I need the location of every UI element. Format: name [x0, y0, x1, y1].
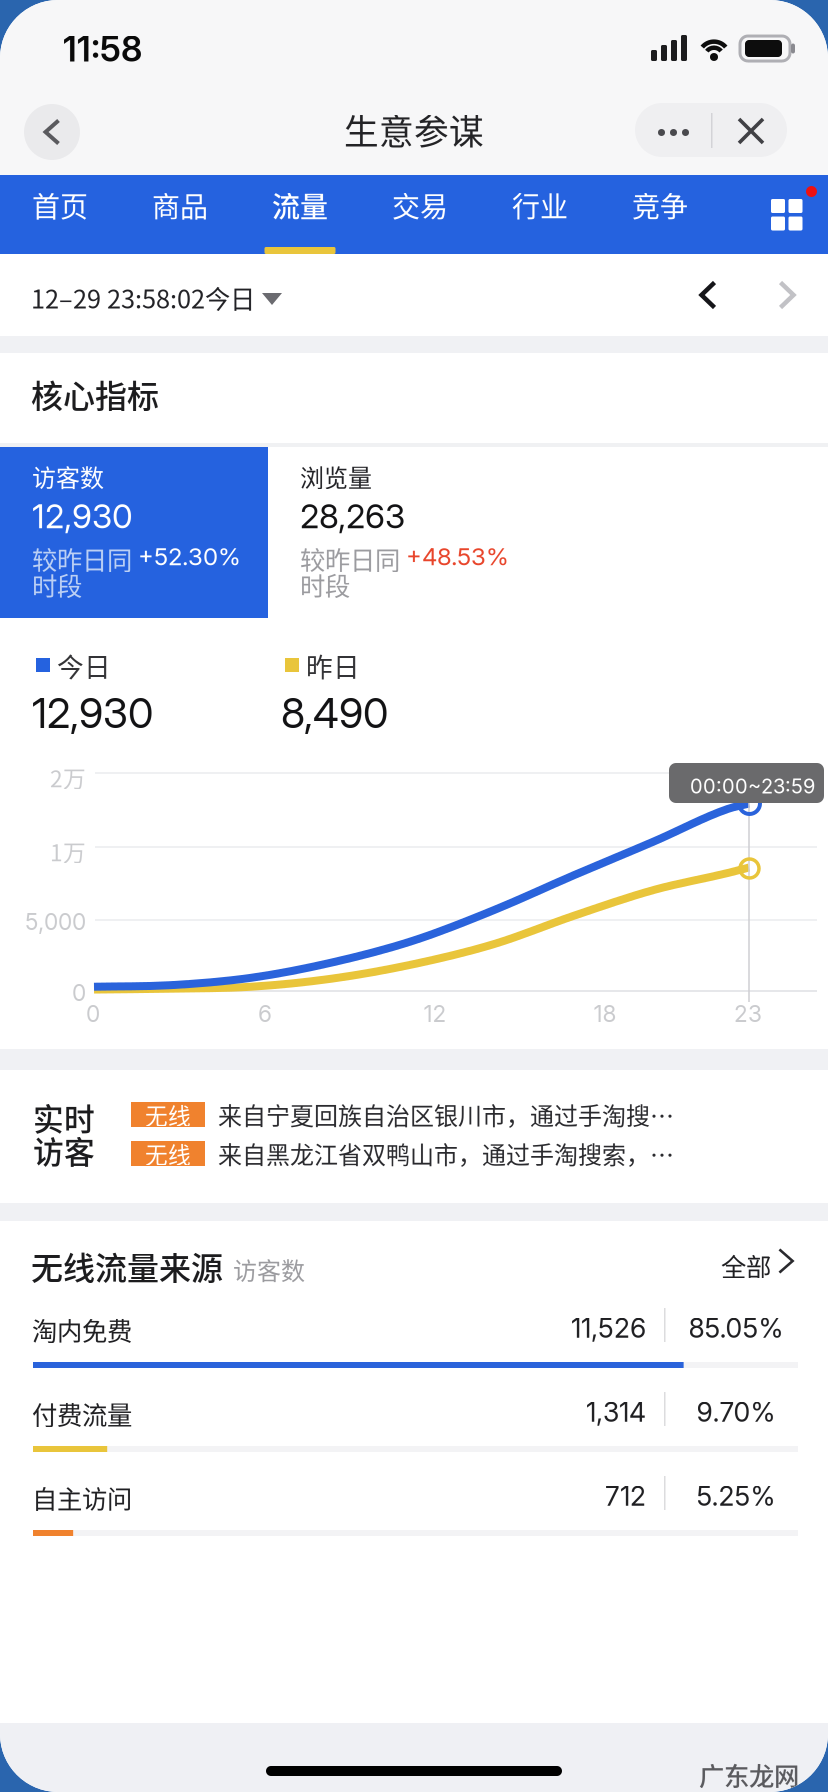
staticText: 712	[605, 1480, 646, 1512]
staticText: 核心指标	[31, 371, 159, 417]
button[interactable]: 流量	[240, 175, 360, 254]
button[interactable]: Previous day	[678, 264, 738, 326]
button[interactable]: 无线	[131, 1132, 821, 1172]
staticText: 广东龙网	[699, 1756, 799, 1792]
staticText: 访客数	[233, 1252, 305, 1287]
staticText: 0	[72, 979, 86, 1006]
button[interactable]: Next day	[757, 264, 817, 326]
button[interactable]: 无线	[131, 1093, 821, 1133]
staticText: 无线	[145, 1137, 191, 1170]
staticText: 12	[423, 1000, 446, 1027]
button[interactable]: 12–29 23:58:02今日	[31, 265, 321, 325]
button[interactable]: 访客数	[0, 447, 268, 618]
staticText: 5,000	[25, 908, 86, 935]
staticText: 8,490	[281, 688, 388, 738]
staticText: 9.70%	[696, 1396, 775, 1428]
staticText: +48.53%	[406, 542, 509, 571]
staticText: 28,263	[300, 496, 405, 536]
staticText: 商品	[152, 185, 208, 225]
button[interactable]: 竞争	[600, 175, 720, 254]
button[interactable]: 全部	[721, 1231, 811, 1287]
staticText: 11:58	[63, 28, 142, 70]
button[interactable]: 自主访问	[0, 1473, 828, 1557]
staticText: 昨日	[306, 646, 360, 685]
staticText: 12,930	[32, 688, 153, 738]
staticText: 无线	[145, 1098, 191, 1131]
button[interactable]: 付费流量	[0, 1389, 828, 1473]
staticText: 实时	[33, 1095, 95, 1139]
staticText: 生意参谋	[344, 104, 484, 155]
staticText: 6	[258, 1000, 272, 1027]
staticText: 流量	[272, 185, 328, 225]
staticText: 85.05%	[688, 1312, 783, 1344]
staticText: 竞争	[632, 185, 688, 225]
button[interactable]: Back	[24, 104, 80, 160]
staticText: 较昨日同	[300, 540, 400, 577]
staticText: 无线流量来源	[31, 1243, 223, 1289]
staticText: 18	[593, 1000, 616, 1027]
staticText: 全部	[721, 1247, 771, 1284]
button[interactable]: More options and close	[635, 103, 787, 157]
staticText: 浏览量	[300, 459, 372, 494]
staticText: 12–29 23:58:02今日	[31, 279, 255, 316]
button[interactable]: 淘内免费	[0, 1305, 828, 1389]
staticText: 付费流量	[32, 1395, 132, 1432]
staticText: 来自宁夏回族自治区银川市，通过手淘搜…	[218, 1097, 674, 1132]
staticText: 0	[86, 1000, 100, 1027]
button[interactable]: 商品	[120, 175, 240, 254]
staticText: 1,314	[586, 1396, 646, 1428]
staticText: 5.25%	[696, 1480, 775, 1512]
staticText: 12,930	[32, 496, 133, 536]
staticText: 淘内免费	[32, 1311, 132, 1348]
button[interactable]: All apps	[738, 175, 828, 254]
staticText: 今日	[57, 646, 111, 685]
staticText: 来自黑龙江省双鸭山市，通过手淘搜索，…	[218, 1136, 674, 1171]
staticText: 11,526	[571, 1312, 646, 1344]
staticText: 时段	[300, 566, 350, 603]
staticText: 访客数	[32, 459, 104, 494]
button[interactable]: 行业	[480, 175, 600, 254]
staticText: 较昨日同	[32, 540, 132, 577]
button[interactable]: 首页	[0, 175, 120, 254]
staticText: 交易	[392, 185, 448, 225]
button[interactable]: 交易	[360, 175, 480, 254]
staticText: +52.30%	[138, 542, 241, 571]
staticText: 23	[734, 1000, 762, 1027]
staticText: 1万	[50, 835, 86, 868]
staticText: 首页	[32, 185, 88, 225]
staticText: 时段	[32, 566, 82, 603]
staticText: 00:00~23:59	[690, 774, 815, 798]
staticText: 访客	[33, 1128, 95, 1172]
button[interactable]: 浏览量	[268, 447, 828, 618]
staticText: 行业	[512, 185, 568, 225]
staticText: 自主访问	[32, 1479, 132, 1516]
staticText: 2万	[50, 761, 86, 794]
